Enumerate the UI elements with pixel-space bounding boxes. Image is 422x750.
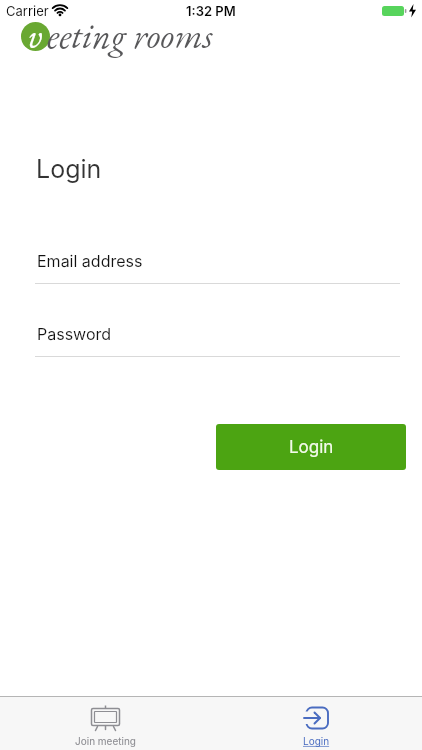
- staticText: 1:32 PM: [186, 3, 236, 19]
- button[interactable]: Login: [216, 424, 406, 470]
- button[interactable]: Login: [211, 697, 422, 750]
- staticText: Join meeting: [75, 735, 137, 747]
- staticText: Login: [36, 154, 102, 184]
- button[interactable]: Email address: [35, 248, 400, 284]
- button[interactable]: Join meeting: [0, 697, 211, 750]
- staticText: Carrier: [6, 3, 49, 19]
- staticText: v: [28, 13, 43, 59]
- staticText: eeting rooms: [47, 12, 213, 59]
- button[interactable]: Password: [35, 321, 400, 357]
- staticText: Login: [303, 735, 330, 747]
- staticText: Login: [289, 437, 334, 458]
- staticText: Email address: [37, 251, 143, 270]
- staticText: Password: [37, 324, 112, 343]
